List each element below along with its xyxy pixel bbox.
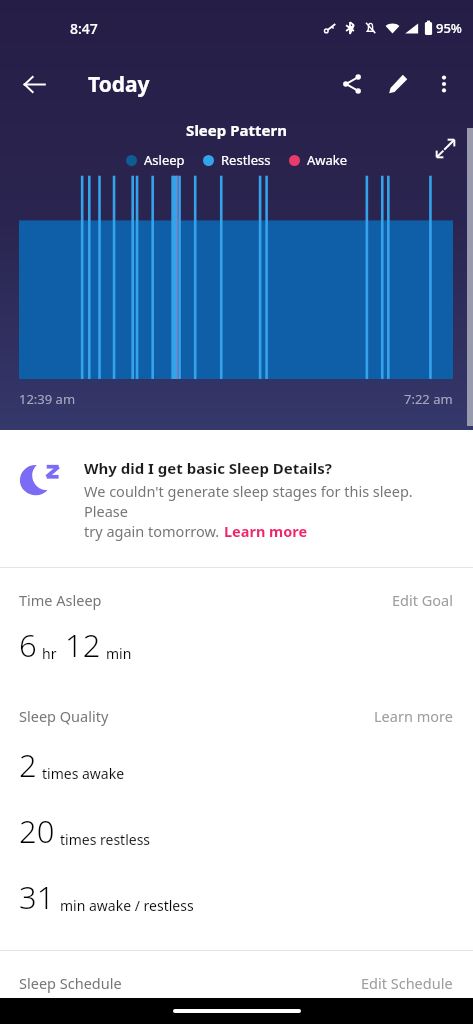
button[interactable]: Sleep Schedule [0,951,473,1024]
staticText: 95% [436,19,462,37]
button[interactable]: Expand chart [427,130,463,166]
staticText: hr [42,644,57,663]
button[interactable]: Why did I get basic Sleep Details? [0,430,473,567]
staticText: 31 [19,876,55,918]
staticText: Restless [221,151,271,169]
staticText: Sleep Pattern [186,120,287,140]
staticText: 8:47 [70,19,98,38]
staticText: min [106,644,132,663]
staticText: Sleep Quality [19,706,109,726]
staticText: 6 [19,624,37,666]
staticText: Asleep [144,151,185,169]
staticText: Sleep Schedule [19,973,122,993]
button[interactable]: Share [329,61,375,107]
staticText: times restless [60,830,151,849]
staticText: 12 [65,624,101,666]
staticText: 12:39 am [19,390,76,408]
button[interactable]: Time Asleep [0,568,473,704]
staticText: 7:22 am [404,390,453,408]
staticText: 20 [19,810,55,852]
staticText: min awake / restless [60,896,194,915]
button[interactable]: Edit Goal [392,590,453,610]
staticText: Time Asleep [19,590,102,610]
button[interactable]: Edit Schedule [361,973,453,993]
button[interactable]: Sleep Quality [0,704,473,950]
staticText: times awake [42,764,125,783]
staticText: We couldn't generate sleep stages for th… [84,481,453,521]
button[interactable]: Edit [375,61,421,107]
button[interactable]: More options [421,61,467,107]
staticText: Why did I get basic Sleep Details? [84,458,332,478]
staticText: 2 [19,744,37,786]
staticText: try again tomorrow. [84,521,224,541]
button[interactable]: Learn more [224,521,308,541]
staticText: Awake [307,151,348,169]
button[interactable]: Learn more [374,706,453,726]
button[interactable]: Back [12,62,56,106]
staticText: Today [88,70,150,99]
staticText: am bedtime [104,1007,184,1021]
